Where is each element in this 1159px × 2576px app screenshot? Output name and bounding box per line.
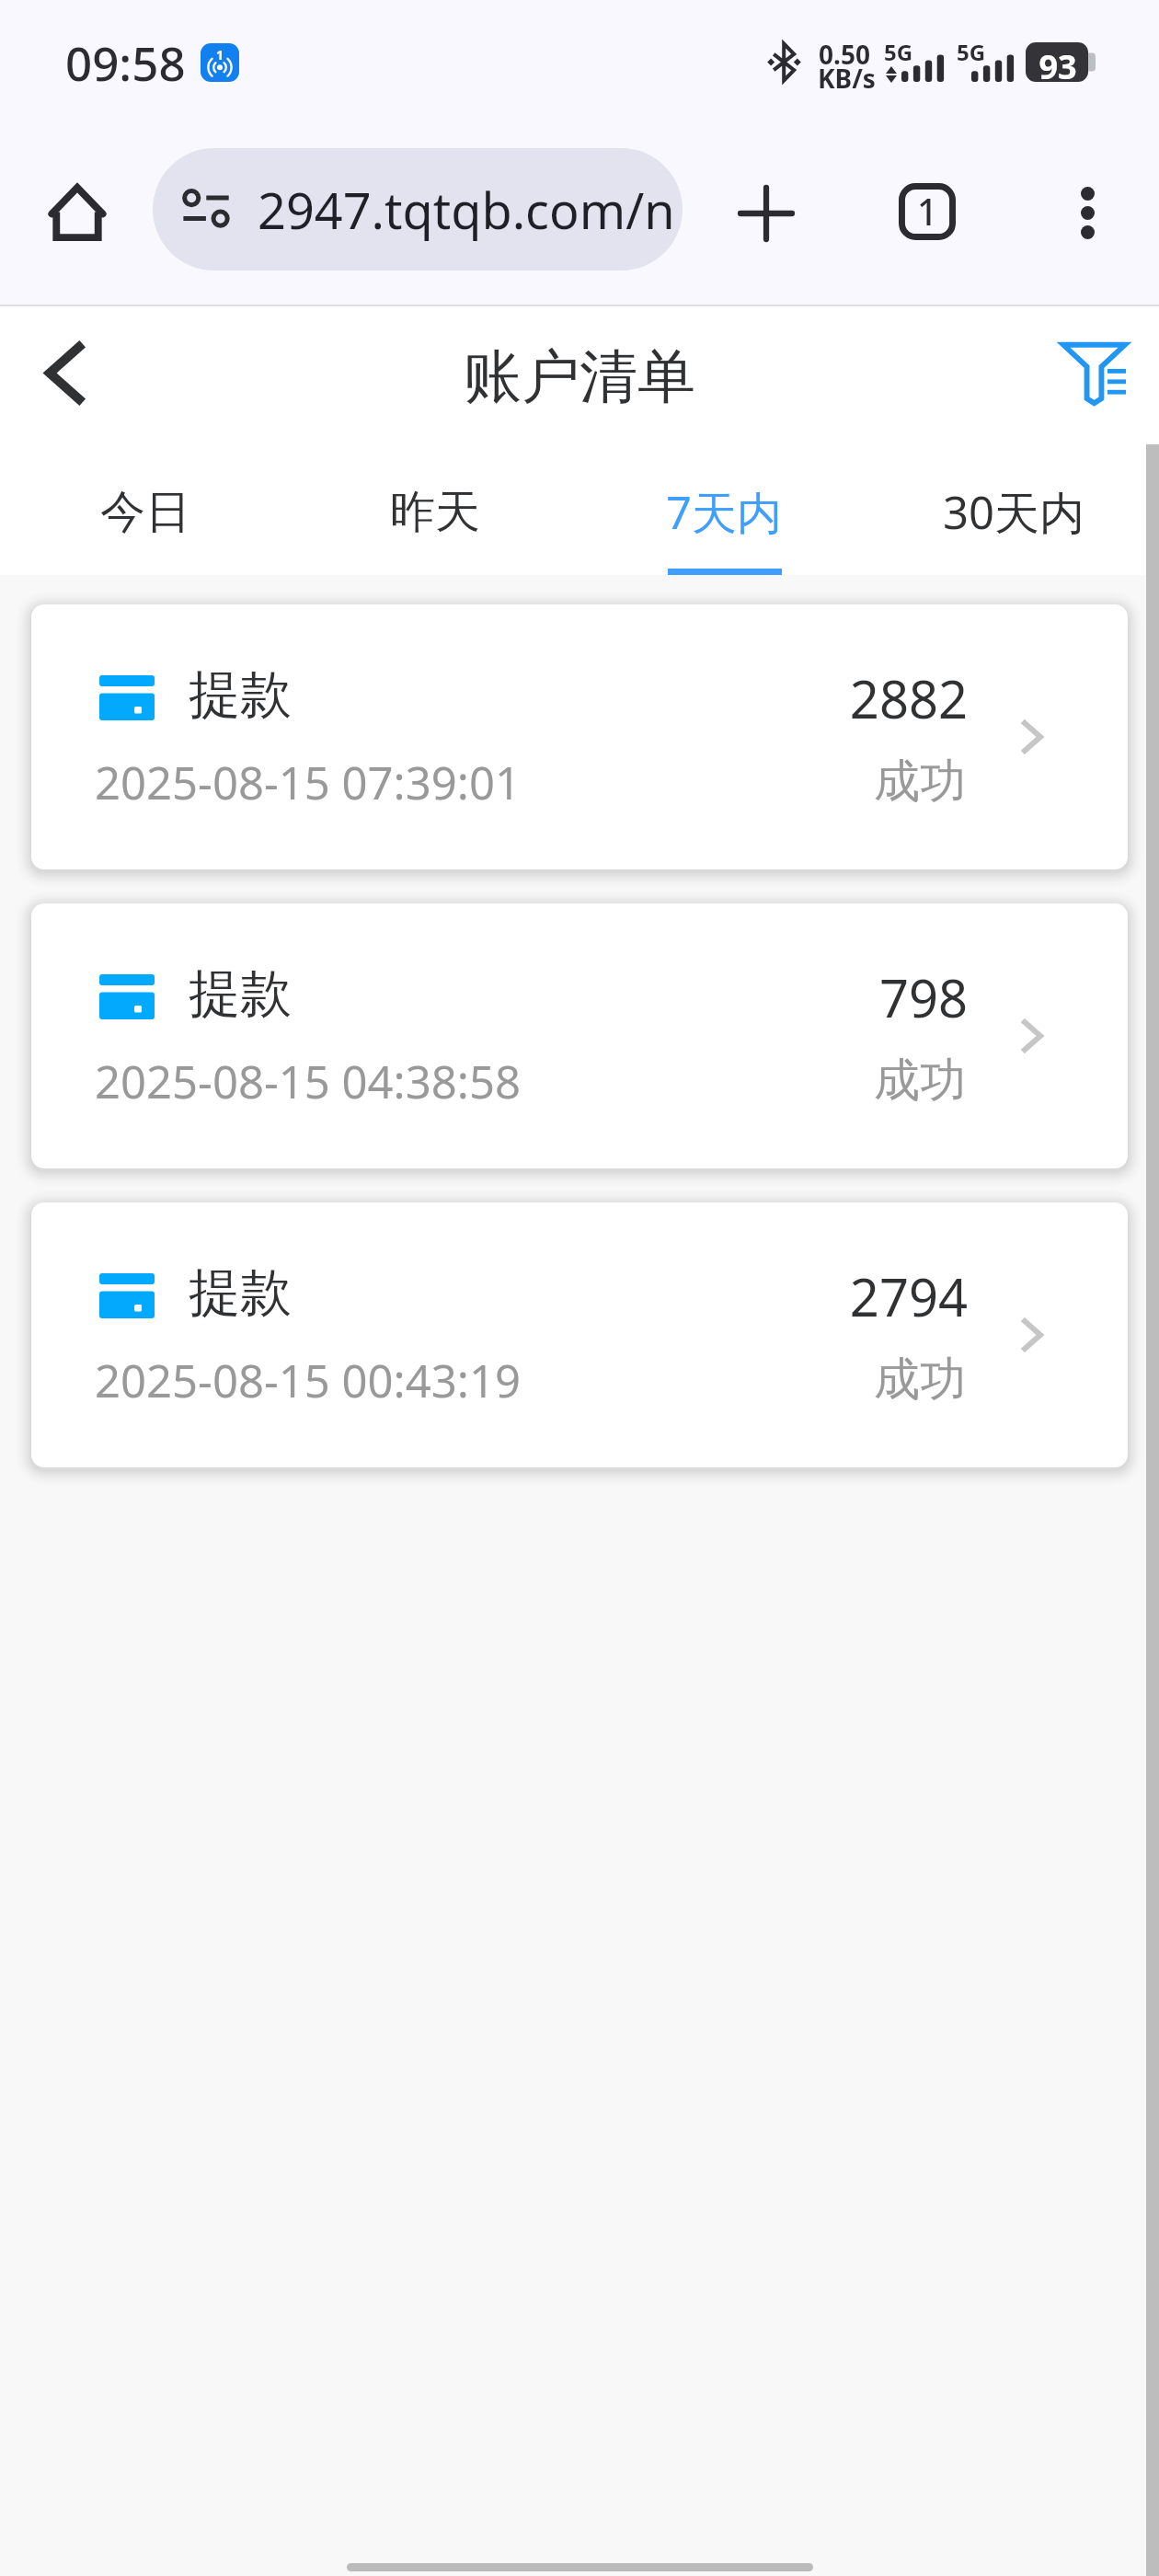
staticText: 成功 <box>688 753 966 811</box>
staticText: 1 <box>917 187 938 236</box>
staticText: 账户清单 <box>464 340 695 413</box>
staticText: 成功 <box>688 1052 966 1110</box>
button[interactable]: Home <box>37 171 118 252</box>
staticText: 昨天 <box>390 484 480 541</box>
staticText: 1 <box>201 46 239 63</box>
staticText: 今日 <box>100 484 190 541</box>
staticText: 提款 <box>189 961 292 1027</box>
button[interactable]: 7天内 <box>579 432 869 575</box>
button[interactable]: 2947.tqtqb.com/n <box>153 148 683 270</box>
staticText: 5G <box>957 37 986 67</box>
button[interactable]: New tab <box>726 173 807 254</box>
button[interactable]: 今日 <box>0 432 290 575</box>
staticText: 2025-08-15 04:38:58 <box>95 1051 521 1112</box>
staticText: 0.50 <box>819 37 870 72</box>
staticText: 提款 <box>189 1260 292 1326</box>
button[interactable]: 30天内 <box>869 432 1159 575</box>
button[interactable]: 提款 <box>31 604 1128 869</box>
button[interactable]: Filter <box>1049 318 1141 410</box>
staticText: 2882 <box>596 663 968 733</box>
staticText: 5G <box>884 37 913 67</box>
button[interactable]: 昨天 <box>290 432 579 575</box>
button[interactable]: Back <box>18 327 110 419</box>
staticText: 提款 <box>189 662 292 728</box>
staticText: 2025-08-15 07:39:01 <box>95 752 521 813</box>
staticText: 798 <box>596 962 968 1032</box>
button[interactable]: 提款 <box>31 1202 1128 1467</box>
staticText: 2025-08-15 00:43:19 <box>95 1350 521 1411</box>
staticText: KB/s <box>818 61 876 96</box>
staticText: 30天内 <box>943 481 1085 543</box>
staticText: 成功 <box>688 1351 966 1409</box>
staticText: 09:58 <box>65 30 186 94</box>
button[interactable]: Tabs <box>887 171 968 252</box>
button[interactable]: More options <box>1047 172 1128 253</box>
staticText: 2947.tqtqb.com/n <box>258 176 675 244</box>
staticText: 2794 <box>596 1261 968 1331</box>
button[interactable]: 提款 <box>31 903 1128 1168</box>
staticText: 93 <box>1027 44 1089 84</box>
staticText: 7天内 <box>666 481 783 543</box>
